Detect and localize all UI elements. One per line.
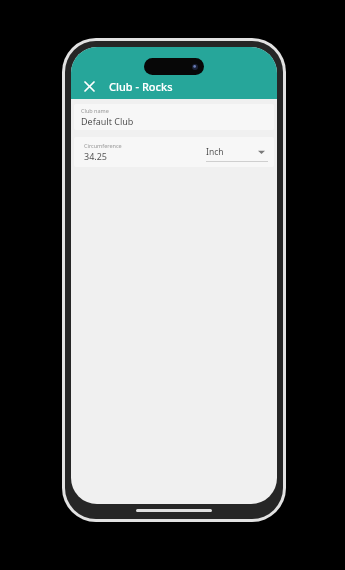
button[interactable]: Close xyxy=(77,74,101,98)
button[interactable]: Inch xyxy=(200,137,274,167)
staticText: 34.25 xyxy=(84,150,108,162)
button[interactable]: Club name xyxy=(74,104,274,130)
staticText: Default Club xyxy=(81,115,134,127)
staticText: Club name xyxy=(81,107,109,114)
button[interactable]: Circumference xyxy=(84,142,200,162)
staticText: Inch xyxy=(206,146,224,158)
staticText: Circumference xyxy=(84,142,122,149)
staticText: Club - Rocks xyxy=(109,79,173,94)
